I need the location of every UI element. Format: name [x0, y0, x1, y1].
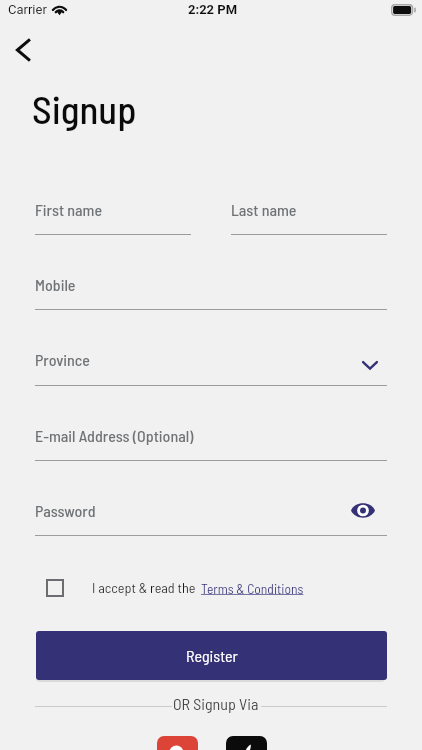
staticText: Terms & Conditions: [201, 580, 304, 596]
button[interactable]: Register: [36, 631, 387, 680]
button[interactable]: Show password: [346, 494, 380, 527]
staticText: Password: [35, 501, 96, 520]
staticText: 2:22 PM: [188, 2, 238, 17]
staticText: Signup: [32, 85, 137, 132]
staticText: Mobile: [35, 275, 76, 294]
button[interactable]: Sign up with Google: [157, 736, 198, 750]
staticText: Province: [35, 350, 90, 369]
staticText: Register: [186, 646, 238, 665]
staticText: E-mail Address (Optional): [35, 426, 194, 445]
button[interactable]: [40, 574, 306, 602]
staticText: Last name: [231, 200, 297, 219]
staticText: I accept & read the: [92, 579, 196, 596]
staticText: OR Signup Via: [173, 694, 259, 713]
button[interactable]: Back: [0, 27, 45, 72]
staticText: Carrier: [8, 2, 47, 17]
button[interactable]: Select province: [353, 348, 387, 382]
button[interactable]: Sign up with Apple: [226, 736, 267, 750]
staticText: First name: [35, 200, 103, 219]
